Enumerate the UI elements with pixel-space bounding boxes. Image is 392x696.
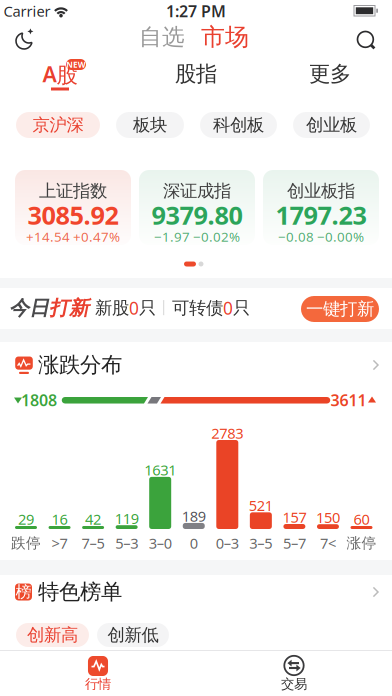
button[interactable]: 科创板: [200, 112, 277, 138]
button[interactable]: 行情: [58, 647, 138, 691]
staticText: 自选: [139, 23, 185, 51]
staticText: 创新高: [27, 624, 78, 646]
staticText: 榜: [15, 582, 31, 602]
staticText: 1808: [21, 389, 57, 411]
button[interactable]: 京沪深: [16, 112, 100, 138]
staticText: 只: [233, 297, 250, 319]
button[interactable]: Dark mode: [13, 27, 37, 51]
staticText: 丨: [156, 298, 172, 318]
staticText: 创新低: [107, 624, 158, 646]
staticText: 科创板: [213, 114, 264, 136]
staticText: 涨停: [346, 534, 376, 552]
staticText: 3–5: [249, 533, 272, 553]
staticText: 157: [282, 507, 306, 527]
staticText: 3085.92: [27, 198, 118, 232]
staticText: 涨跌分布: [38, 352, 122, 378]
button[interactable]: Search: [356, 30, 376, 50]
staticText: 150: [316, 507, 340, 527]
staticText: 深证成指: [163, 180, 231, 202]
staticText: 今日: [9, 296, 49, 320]
staticText: 2783: [211, 423, 243, 443]
staticText: 29: [18, 509, 34, 529]
staticText: 189: [182, 506, 206, 526]
button[interactable]: 创新高: [16, 623, 89, 647]
staticText: 创业板指: [287, 180, 355, 202]
staticText: 5–7: [283, 533, 306, 553]
staticText: 跌停: [11, 534, 41, 552]
button[interactable]: 创业板指: [263, 170, 379, 245]
button[interactable]: 创业板: [293, 112, 370, 138]
staticText: 市场: [201, 22, 249, 52]
staticText: 创业板: [306, 114, 357, 136]
staticText: 交易: [281, 676, 307, 692]
button[interactable]: 交易: [254, 647, 334, 691]
staticText: 42: [85, 509, 101, 529]
button[interactable]: 上证指数: [15, 170, 131, 245]
staticText: 更多: [309, 61, 351, 87]
staticText: 上证指数: [39, 180, 107, 202]
button[interactable]: 自选: [139, 23, 185, 51]
staticText: 0: [223, 296, 233, 319]
staticText: +14.54 +0.47%: [26, 228, 120, 245]
staticText: 一键打新: [306, 298, 374, 320]
staticText: 1631: [144, 460, 176, 480]
staticText: 7<: [320, 533, 336, 553]
staticText: 3–0: [149, 533, 172, 553]
staticText: 119: [115, 508, 139, 528]
staticText: Carrier: [3, 1, 50, 21]
button[interactable]: 市场: [201, 22, 249, 52]
staticText: 特色榜单: [38, 579, 122, 605]
staticText: 股指: [175, 61, 217, 87]
staticText: 5–3: [115, 533, 138, 553]
staticText: 0–3: [216, 533, 239, 553]
button[interactable]: 股指: [156, 59, 236, 89]
staticText: 打新: [49, 296, 89, 320]
staticText: NEW: [61, 56, 90, 72]
staticText: 16: [51, 509, 67, 529]
staticText: 可转债: [172, 297, 223, 319]
button[interactable]: 一键打新: [301, 296, 379, 322]
staticText: 1:27 PM: [166, 0, 226, 22]
staticText: >7: [51, 533, 67, 553]
staticText: 0: [190, 533, 198, 553]
button[interactable]: A股: [20, 59, 100, 89]
staticText: −0.08 −0.00%: [278, 228, 364, 245]
staticText: 9379.80: [151, 198, 242, 232]
staticText: −1.97 −0.02%: [154, 228, 240, 245]
button[interactable]: 创新低: [97, 623, 169, 647]
button[interactable]: 更多: [290, 59, 370, 89]
staticText: 行情: [85, 676, 111, 692]
staticText: 1797.23: [275, 198, 366, 232]
button[interactable]: 板块: [116, 112, 184, 138]
staticText: 新股: [95, 297, 129, 319]
staticText: 60: [353, 509, 369, 529]
button[interactable]: More rankings: [370, 586, 382, 598]
button[interactable]: 深证成指: [139, 170, 255, 245]
button[interactable]: More distribution: [370, 359, 382, 371]
staticText: A股: [42, 60, 77, 88]
staticText: 521: [249, 496, 273, 515]
staticText: 板块: [133, 114, 167, 136]
staticText: 7–5: [82, 533, 105, 553]
staticText: 京沪深: [32, 114, 83, 136]
staticText: 3611: [330, 389, 366, 411]
staticText: 0: [129, 296, 139, 319]
staticText: 只: [139, 297, 156, 319]
